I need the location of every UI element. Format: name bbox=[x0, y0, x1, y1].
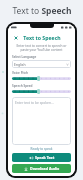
button[interactable]: Close bbox=[12, 34, 19, 41]
staticText: English bbox=[14, 62, 26, 67]
staticText: Speech Speed bbox=[12, 84, 33, 88]
button[interactable]: Download Audio bbox=[12, 164, 71, 173]
staticText: Text to Speech bbox=[12, 5, 72, 17]
staticText: Download Audio bbox=[30, 166, 60, 171]
button[interactable]: Slider bbox=[12, 76, 71, 81]
staticText: Ready to speak bbox=[12, 147, 71, 151]
button[interactable]: Slider bbox=[12, 89, 71, 94]
staticText: Enter text to convert to speech or paste… bbox=[15, 44, 68, 52]
staticText: Text to Speech bbox=[23, 34, 61, 41]
button[interactable]: Speak Text bbox=[12, 153, 71, 162]
button[interactable]: English bbox=[12, 60, 71, 68]
staticText: Voice Pitch bbox=[12, 71, 29, 75]
staticText: Enter text to be spoken... bbox=[15, 100, 54, 104]
staticText: Select Language bbox=[12, 55, 37, 59]
button[interactable]: Enter text to be spoken... bbox=[12, 97, 71, 145]
staticText: Speak Text bbox=[35, 155, 55, 160]
